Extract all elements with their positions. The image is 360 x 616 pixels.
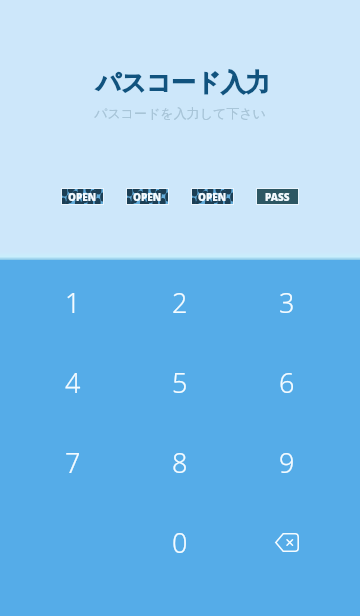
- button[interactable]: 4: [20, 342, 126, 422]
- button[interactable]: 6: [233, 342, 340, 422]
- staticText: OPEN: [133, 190, 162, 204]
- staticText: パスコードを入力して下さい: [94, 105, 266, 121]
- button[interactable]: 5: [126, 342, 233, 422]
- staticText: 1: [65, 284, 81, 321]
- button[interactable]: 9: [233, 422, 340, 502]
- button[interactable]: PASS: [257, 189, 298, 204]
- staticText: 3: [279, 284, 295, 321]
- staticText: 2: [172, 284, 188, 321]
- other: Backspace: [275, 533, 299, 552]
- staticText: 4: [65, 364, 81, 401]
- staticText: OPEN: [198, 190, 227, 204]
- staticText: 6: [279, 364, 295, 401]
- button[interactable]: OPEN: [127, 189, 168, 204]
- button[interactable]: 3: [233, 262, 340, 342]
- button[interactable]: 7: [20, 422, 126, 502]
- staticText: 9: [279, 444, 295, 481]
- staticText: OPEN: [68, 190, 97, 204]
- staticText: 5: [172, 364, 188, 401]
- button[interactable]: 0: [126, 502, 233, 582]
- button[interactable]: 1: [20, 262, 126, 342]
- staticText: 8: [172, 444, 188, 481]
- button[interactable]: 8: [126, 422, 233, 502]
- staticText: 0: [172, 524, 188, 561]
- button[interactable]: 2: [126, 262, 233, 342]
- button[interactable]: Backspace: [233, 502, 340, 582]
- button[interactable]: OPEN: [192, 189, 233, 204]
- staticText: 7: [65, 444, 81, 481]
- staticText: PASS: [265, 190, 290, 204]
- staticText: パスコード入力: [96, 67, 270, 98]
- button[interactable]: OPEN: [62, 189, 103, 204]
